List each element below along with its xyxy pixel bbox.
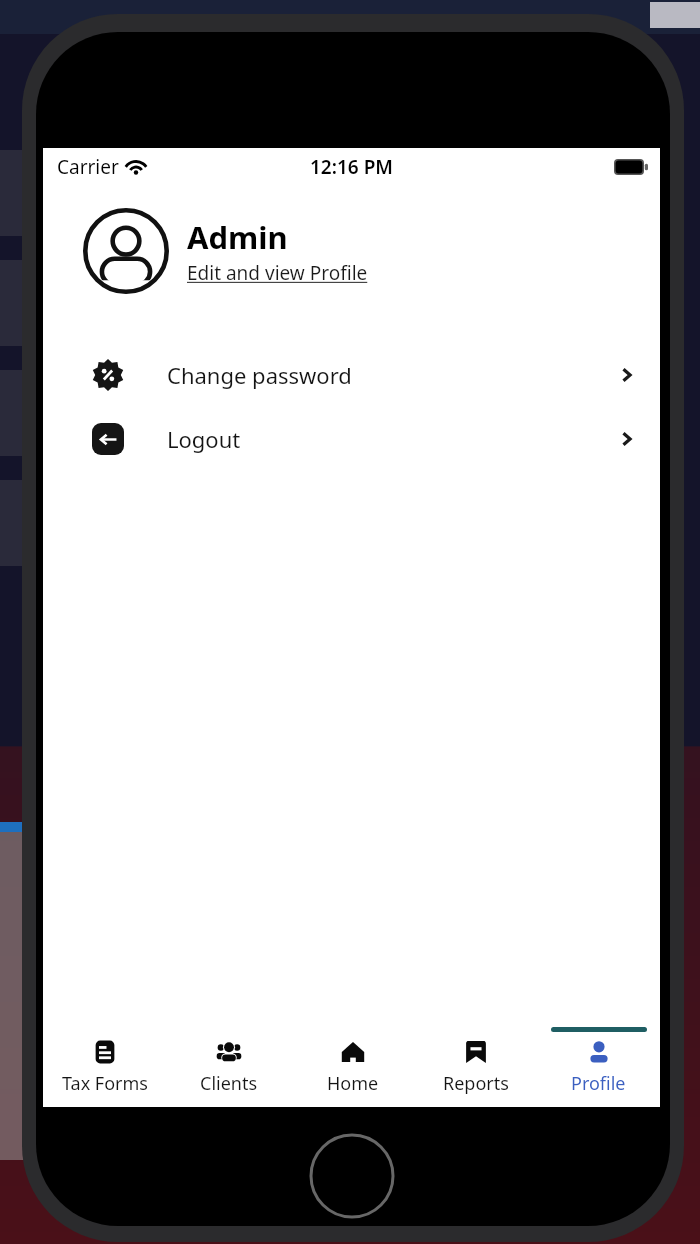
staticText: Change password xyxy=(167,360,352,390)
button[interactable]: Tax Forms xyxy=(43,1025,167,1107)
staticText: Tax Forms xyxy=(62,1071,148,1096)
staticText: Profile xyxy=(571,1071,626,1096)
staticText: Home xyxy=(327,1071,379,1096)
button[interactable]: Change password xyxy=(43,350,660,400)
staticText: Logout xyxy=(167,424,241,454)
staticText: Admin xyxy=(187,216,288,258)
button[interactable]: Admin xyxy=(83,208,660,294)
staticText: Clients xyxy=(200,1071,258,1096)
button[interactable]: Clients xyxy=(167,1025,291,1107)
button[interactable]: Reports xyxy=(414,1025,537,1107)
staticText: Reports xyxy=(443,1071,509,1096)
button[interactable]: Logout xyxy=(43,414,660,464)
staticText: Edit and view Profile xyxy=(187,260,368,286)
button[interactable]: Home xyxy=(291,1025,414,1107)
staticText: Carrier xyxy=(57,154,119,180)
staticText: 12:16 PM xyxy=(310,154,393,180)
button[interactable]: Profile xyxy=(537,1025,660,1107)
